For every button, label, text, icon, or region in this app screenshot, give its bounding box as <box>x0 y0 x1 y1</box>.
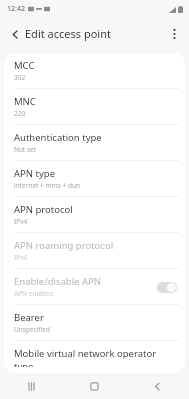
button[interactable]: Back <box>126 373 189 399</box>
staticText: internet + mms + dun <box>14 181 80 190</box>
staticText: Unspecified <box>14 325 50 334</box>
button[interactable]: APN type <box>4 161 185 196</box>
staticText: Enable/disable APN <box>14 275 102 288</box>
staticText: IPv4 <box>14 217 28 226</box>
button[interactable]: Recent apps <box>0 373 63 399</box>
button[interactable]: Enable/disable APN <box>4 269 185 304</box>
staticText: Bearer <box>14 311 44 324</box>
button[interactable]: More options <box>165 25 183 43</box>
button[interactable]: MNC <box>4 89 185 124</box>
button[interactable]: APN roaming protocol <box>4 233 185 268</box>
button[interactable]: Back <box>6 25 24 43</box>
staticText: APN type <box>14 167 55 180</box>
button[interactable]: MCC <box>4 53 185 88</box>
staticText: Authentication type <box>14 131 102 144</box>
staticText: APN enabled <box>14 289 54 298</box>
staticText: 302 <box>14 73 26 82</box>
staticText: MNC <box>14 95 36 108</box>
staticText: MCC <box>14 59 35 72</box>
staticText: APN protocol <box>14 203 73 216</box>
button[interactable]: Mobile virtual network operator type <box>4 341 185 373</box>
staticText: Edit access point <box>25 26 111 41</box>
button[interactable]: Authentication type <box>4 125 185 160</box>
button[interactable]: Home <box>63 373 126 399</box>
staticText: Not set <box>14 145 37 154</box>
staticText: APN roaming protocol <box>14 239 114 252</box>
button[interactable]: APN protocol <box>4 197 185 232</box>
staticText: IPv4 <box>14 253 28 262</box>
button[interactable]: Bearer <box>4 305 185 340</box>
button[interactable]: Enable or disable APN <box>156 281 177 293</box>
staticText: 12:42 <box>7 4 25 14</box>
staticText: 220 <box>14 109 26 118</box>
staticText: Mobile virtual network operator type <box>14 347 177 367</box>
